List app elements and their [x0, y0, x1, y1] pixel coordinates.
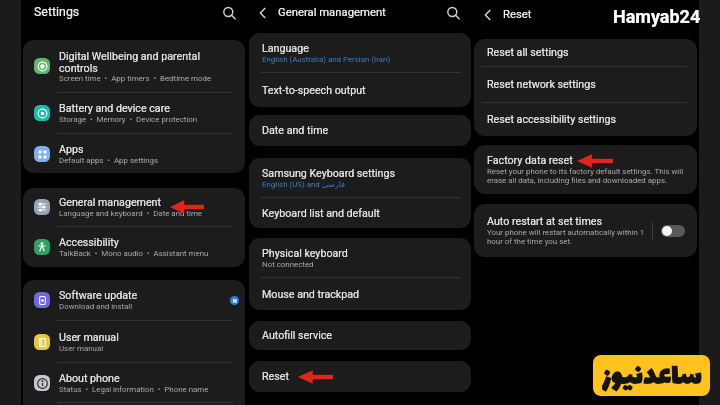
- button[interactable]: Keyboard list and default: [249, 198, 471, 228]
- staticText: Reset: [503, 8, 532, 21]
- button[interactable]: Accessibility: [23, 227, 245, 267]
- button[interactable]: Language: [249, 33, 471, 72]
- staticText: Date and time: [262, 124, 329, 137]
- button[interactable]: Apps: [23, 134, 245, 173]
- staticText: Reset accessibility settings: [487, 113, 617, 126]
- staticText: Accessibility: [59, 236, 119, 249]
- staticText: Reset all settings: [487, 46, 569, 59]
- button[interactable]: Search: [219, 3, 239, 23]
- button[interactable]: Samsung Keyboard settings: [249, 158, 471, 197]
- staticText: General management: [59, 196, 162, 209]
- staticText: Download and install: [59, 302, 133, 311]
- staticText: Reset: [262, 370, 289, 383]
- staticText: Software update: [59, 289, 138, 302]
- staticText: Keyboard list and default: [262, 207, 380, 220]
- button[interactable]: Software update: [23, 280, 245, 320]
- staticText: Settings: [34, 4, 80, 19]
- button[interactable]: Physical keyboard: [249, 238, 471, 277]
- button[interactable]: About phone: [23, 363, 245, 402]
- staticText: Battery and device care: [59, 102, 170, 115]
- button[interactable]: Reset network settings: [474, 67, 697, 102]
- button[interactable]: Date and time: [249, 115, 471, 146]
- staticText: Reset network settings: [487, 78, 596, 91]
- button[interactable]: Mouse and trackpad: [249, 278, 471, 310]
- button[interactable]: Text-to-speech output: [249, 73, 471, 107]
- staticText: Text-to-speech output: [262, 84, 366, 97]
- staticText: General management: [278, 6, 386, 19]
- button[interactable]: Back: [255, 5, 271, 21]
- button[interactable]: User manual: [23, 321, 245, 362]
- staticText: Storage • Memory • Device protection: [59, 115, 198, 124]
- staticText: ساعدنیوز: [602, 355, 702, 396]
- staticText: English (Australia) and Persian (Iran): [262, 55, 391, 64]
- button[interactable]: Auto restart toggle: [661, 225, 685, 237]
- staticText: Auto restart at set times: [487, 215, 602, 228]
- staticText: TalkBack • Mono audio • Assistant menu: [59, 249, 209, 258]
- staticText: About phone: [59, 372, 120, 385]
- staticText: Status • Legal information • Phone name: [59, 385, 209, 394]
- staticText: Language: [262, 42, 309, 55]
- staticText: Apps: [59, 143, 84, 156]
- staticText: Screen time • App timers • Bedtime mode: [59, 74, 212, 83]
- button[interactable]: Back: [480, 7, 496, 23]
- staticText: Your phone will restart automatically wi…: [487, 228, 646, 246]
- staticText: Reset your phone to its factory default …: [487, 167, 686, 185]
- button[interactable]: Auto restart at set times: [474, 204, 697, 257]
- staticText: English (US) and فارسی: [262, 180, 345, 189]
- button[interactable]: Reset accessibility settings: [474, 103, 697, 136]
- button[interactable]: Digital Wellbeing and parental controls: [23, 40, 245, 92]
- button[interactable]: General management: [23, 188, 245, 226]
- staticText: Mouse and trackpad: [262, 288, 360, 301]
- staticText: Physical keyboard: [262, 247, 348, 260]
- staticText: Autofill service: [262, 329, 333, 342]
- staticText: Default apps • App settings: [59, 156, 159, 165]
- button[interactable]: Factory data reset: [474, 145, 697, 194]
- button[interactable]: Reset all settings: [474, 39, 697, 66]
- staticText: Digital Wellbeing and parental controls: [59, 50, 200, 74]
- staticText: User manual: [59, 344, 104, 353]
- staticText: Samsung Keyboard settings: [262, 167, 396, 180]
- staticText: Language and keyboard • Date and time: [59, 209, 203, 218]
- button[interactable]: Battery and device care: [23, 93, 245, 133]
- staticText: Factory data reset: [487, 154, 573, 167]
- button[interactable]: Reset: [249, 361, 471, 392]
- button[interactable]: Search: [444, 4, 462, 22]
- staticText: User manual: [59, 331, 119, 344]
- button[interactable]: Autofill service: [249, 321, 471, 350]
- staticText: N: [233, 298, 237, 304]
- staticText: Not connected: [262, 260, 314, 269]
- staticText: Hamyab24: [613, 6, 701, 27]
